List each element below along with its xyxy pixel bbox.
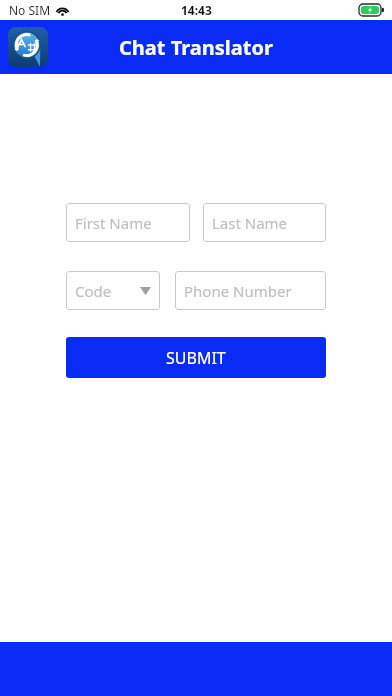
button[interactable]: Chat Translator logo <box>8 27 48 67</box>
staticText: Chat Translator <box>119 34 273 61</box>
button[interactable]: First Name <box>66 203 190 242</box>
staticText: Phone Number <box>184 281 292 301</box>
staticText: Last Name <box>212 213 288 233</box>
button[interactable]: Code <box>66 271 160 310</box>
staticText: 14:43 <box>181 2 212 18</box>
button[interactable]: Phone Number <box>175 271 326 310</box>
staticText: Code <box>75 281 112 301</box>
staticText: SUBMIT <box>166 347 226 369</box>
button[interactable]: Last Name <box>203 203 326 242</box>
staticText: First Name <box>75 213 152 233</box>
button[interactable]: SUBMIT <box>66 337 326 378</box>
staticText: No SIM <box>9 2 51 18</box>
